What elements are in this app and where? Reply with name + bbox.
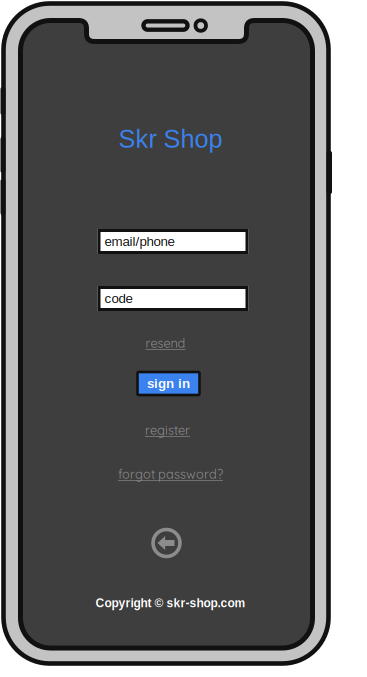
button[interactable]: email/phone [97,229,248,254]
staticText: sign in [147,376,190,391]
staticText: Copyright © skr-shop.com [95,596,245,610]
staticText: register [145,422,190,438]
button[interactable]: forgot password? [113,462,228,486]
button[interactable]: register [140,418,195,442]
button[interactable]: code [97,286,248,311]
staticText: resend [145,335,185,351]
staticText: Skr Shop [118,125,222,153]
button[interactable]: Back [150,527,182,559]
staticText: email/phone [104,234,174,249]
button[interactable]: sign in [137,372,199,395]
staticText: forgot password? [118,466,223,482]
staticText: code [104,291,132,306]
button[interactable]: resend [140,331,190,355]
